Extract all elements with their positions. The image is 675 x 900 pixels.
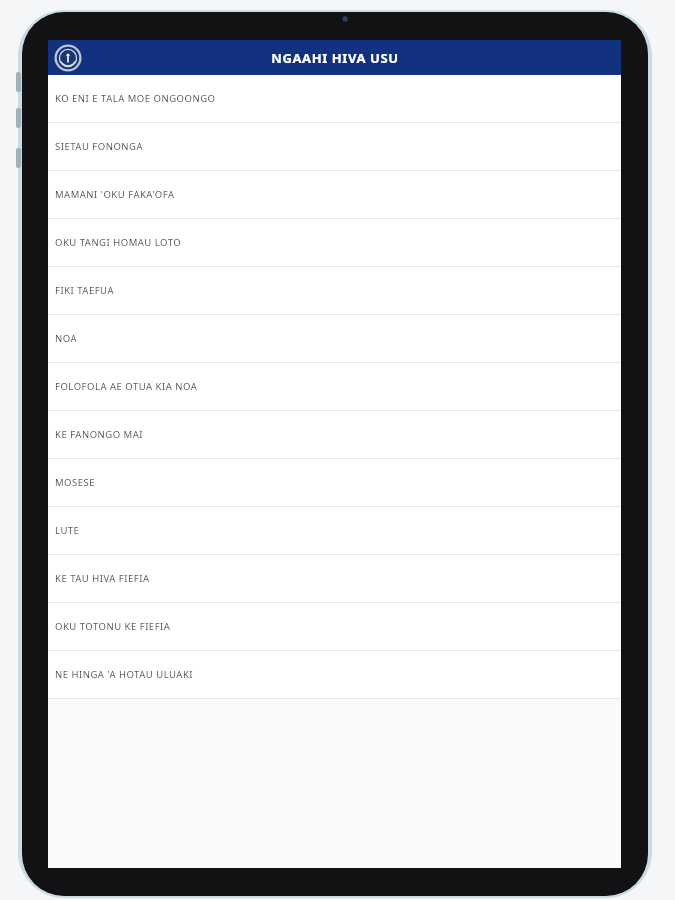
button[interactable]: App logo	[53, 43, 83, 73]
button[interactable]: NOA	[48, 315, 621, 363]
button[interactable]: OKU TOTONU KE FIEFIA	[48, 603, 621, 651]
button[interactable]: LUTE	[48, 507, 621, 555]
button[interactable]: KE TAU HIVA FIEFIA	[48, 555, 621, 603]
button[interactable]: NE HINGA 'A HOTAU ULUAKI	[48, 651, 621, 699]
staticText: LUTE	[55, 524, 80, 537]
staticText: OKU TOTONU KE FIEFIA	[55, 620, 171, 633]
staticText: SIETAU FONONGA	[55, 140, 144, 153]
staticText: KO ENI E TALA MOE ONGOONGO	[55, 92, 216, 105]
staticText: KE TAU HIVA FIEFIA	[55, 572, 150, 585]
staticText: FOLOFOLA AE OTUA KIA NOA	[55, 380, 198, 393]
button[interactable]: MAMANI 'OKU FAKA'OFA	[48, 171, 621, 219]
button[interactable]: SIETAU FONONGA	[48, 123, 621, 171]
staticText: FIKI TAEFUA	[55, 284, 115, 297]
staticText: NOA	[55, 332, 78, 345]
button[interactable]: OKU TANGI HOMAU LOTO	[48, 219, 621, 267]
staticText: MOSESE	[55, 476, 96, 489]
staticText: KE FANONGO MAI	[55, 428, 144, 441]
staticText: NE HINGA 'A HOTAU ULUAKI	[55, 668, 194, 681]
staticText: MAMANI 'OKU FAKA'OFA	[55, 188, 175, 201]
button[interactable]: FIKI TAEFUA	[48, 267, 621, 315]
staticText: NGAAHI HIVA USU	[271, 49, 399, 67]
button[interactable]: FOLOFOLA AE OTUA KIA NOA	[48, 363, 621, 411]
button[interactable]: KO ENI E TALA MOE ONGOONGO	[48, 75, 621, 123]
button[interactable]: KE FANONGO MAI	[48, 411, 621, 459]
staticText: OKU TANGI HOMAU LOTO	[55, 236, 182, 249]
button[interactable]: MOSESE	[48, 459, 621, 507]
